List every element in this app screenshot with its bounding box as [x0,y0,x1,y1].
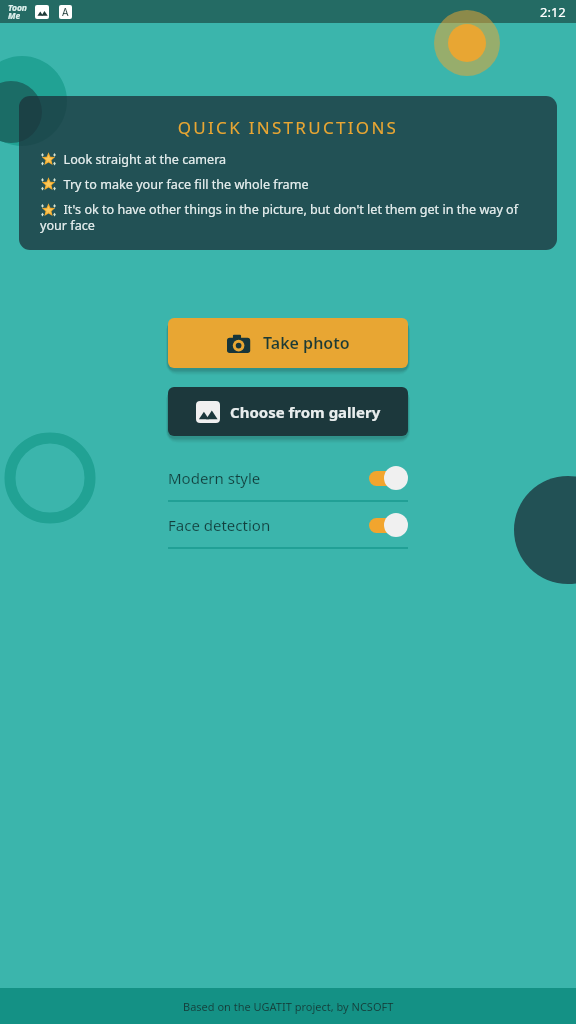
staticText: A [62,5,69,19]
staticText: Choose from gallery [230,402,381,422]
other: Camera [227,333,254,354]
button[interactable]: Face detection [168,502,408,547]
staticText: Face detection [168,515,271,535]
button[interactable]: Gallery [168,387,408,436]
staticText: Modern style [168,468,261,488]
staticText: Toon Me [8,2,28,22]
button[interactable]: Modern style [168,455,408,500]
staticText: * It's ok to have other things in the pi… [40,201,526,233]
staticText: * Look straight at the camera [40,151,526,168]
staticText: Take photo [263,332,350,354]
other: Gallery [196,400,220,424]
staticText: * Try to make your face fill the whole f… [40,176,526,193]
staticText: Based on the UGATIT project, by NCSOFT [183,999,394,1014]
staticText: QUICK INSTRUCTIONS [19,116,557,139]
button[interactable]: Camera [168,318,408,368]
staticText: 2:12 [540,3,566,21]
